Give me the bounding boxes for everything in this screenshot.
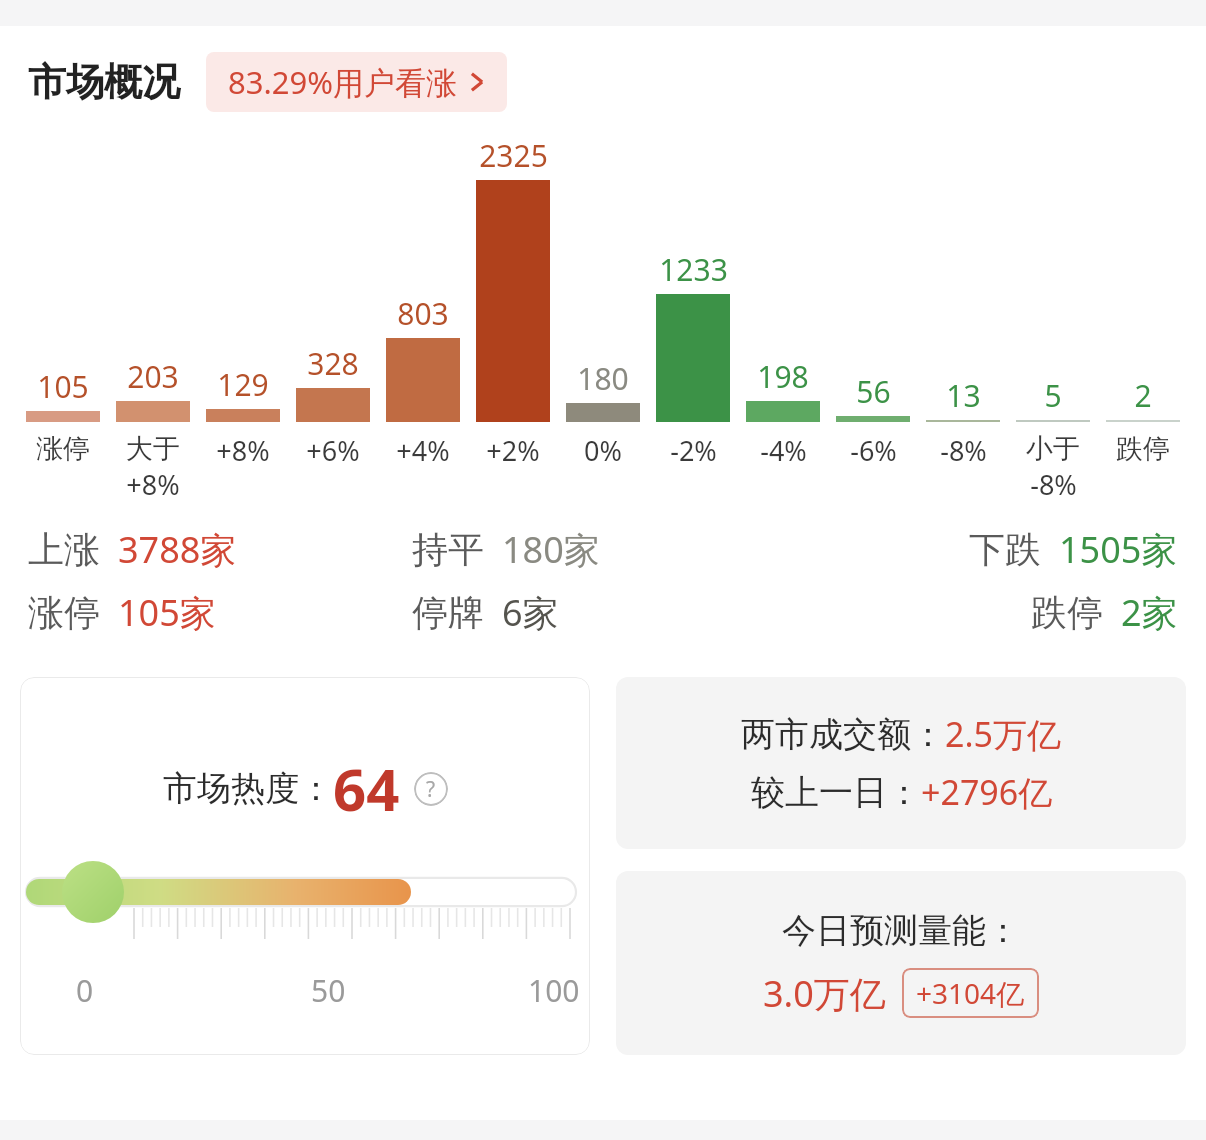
- staticText: 今日预测量能：: [782, 909, 1020, 952]
- staticText: 0%: [584, 432, 622, 469]
- button[interactable]: 83.29%用户看涨: [206, 52, 507, 112]
- staticText: 1505家: [1059, 525, 1178, 574]
- button[interactable]: 市场热度：: [20, 677, 590, 1055]
- staticText: 2家: [1121, 588, 1178, 637]
- staticText: 5: [1044, 375, 1062, 416]
- staticText: +8%: [216, 432, 270, 469]
- staticText: 13: [946, 375, 981, 416]
- staticText: 持平: [412, 527, 484, 572]
- staticText: +4%: [396, 432, 450, 469]
- staticText: 0: [76, 970, 94, 1011]
- staticText: +6%: [306, 432, 360, 469]
- staticText: +8%: [126, 466, 180, 503]
- staticText: ?: [426, 775, 436, 804]
- staticText: -6%: [850, 432, 897, 469]
- staticText: 两市成交额：: [741, 713, 945, 756]
- staticText: +3104亿: [916, 974, 1025, 1012]
- staticText: 上涨: [28, 527, 100, 572]
- staticText: 50: [311, 970, 346, 1011]
- staticText: 105家: [118, 588, 216, 637]
- staticText: +2796亿: [921, 769, 1053, 815]
- staticText: 较上一日：: [751, 771, 921, 814]
- staticText: 大于: [126, 432, 180, 466]
- button[interactable]: 两市成交额：: [616, 677, 1186, 849]
- staticText: 2: [1134, 375, 1152, 416]
- staticText: 跌停: [1031, 590, 1103, 635]
- staticText: 3.0万亿: [763, 969, 886, 1018]
- staticText: 1233: [659, 249, 728, 290]
- staticText: 180家: [502, 525, 600, 574]
- staticText: 3788家: [118, 525, 237, 574]
- staticText: -8%: [940, 432, 987, 469]
- staticText: 198: [757, 356, 809, 397]
- button[interactable]: 说明: [414, 772, 448, 806]
- staticText: 小于: [1026, 432, 1080, 466]
- staticText: 停牌: [412, 590, 484, 635]
- staticText: 64: [333, 749, 400, 828]
- staticText: 2325: [479, 135, 548, 176]
- staticText: 涨停: [28, 590, 100, 635]
- staticText: 6家: [502, 588, 559, 637]
- staticText: 市场热度：: [163, 767, 333, 810]
- staticText: 105: [37, 366, 89, 407]
- button[interactable]: 今日预测量能：: [616, 871, 1186, 1055]
- staticText: 下跌: [969, 527, 1041, 572]
- staticText: +2%: [486, 432, 540, 469]
- staticText: 203: [127, 356, 179, 397]
- staticText: 803: [397, 293, 449, 334]
- staticText: 83.29%用户看涨: [228, 61, 457, 103]
- staticText: 市场概况: [28, 58, 180, 106]
- staticText: -4%: [760, 432, 807, 469]
- staticText: 56: [856, 371, 891, 412]
- staticText: 180: [577, 358, 629, 399]
- staticText: -8%: [1030, 466, 1077, 503]
- staticText: 跌停: [1116, 432, 1170, 466]
- staticText: 2.5万亿: [945, 711, 1062, 757]
- staticText: 涨停: [36, 432, 90, 466]
- staticText: 100: [528, 970, 580, 1011]
- staticText: -2%: [670, 432, 717, 469]
- staticText: 328: [307, 343, 359, 384]
- staticText: 129: [217, 364, 269, 405]
